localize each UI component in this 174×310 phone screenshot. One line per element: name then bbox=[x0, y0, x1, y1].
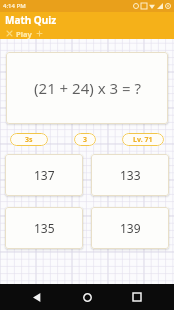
button[interactable]: Back bbox=[24, 284, 50, 310]
button[interactable]: Close quiz bbox=[4, 28, 14, 39]
button[interactable]: 139 bbox=[91, 207, 169, 249]
button[interactable]: 137 bbox=[5, 154, 83, 196]
staticText: (21 + 24) x 3 = ? bbox=[34, 78, 141, 98]
button[interactable]: 3 bbox=[74, 133, 96, 146]
staticText: 139 bbox=[120, 220, 141, 236]
staticText: 135 bbox=[34, 220, 55, 236]
button[interactable]: Lv. 71 bbox=[122, 133, 164, 146]
staticText: Math Quiz bbox=[5, 13, 57, 27]
staticText: 4:14 PM bbox=[3, 2, 26, 10]
staticText: 137 bbox=[34, 167, 55, 183]
staticText: Lv. 71 bbox=[133, 135, 153, 145]
staticText: 3s bbox=[25, 135, 33, 145]
staticText: 3 bbox=[83, 135, 88, 145]
button[interactable]: Home bbox=[74, 284, 100, 310]
button[interactable]: Add bbox=[34, 28, 44, 39]
button[interactable]: 133 bbox=[91, 154, 169, 196]
staticText: Play bbox=[16, 29, 32, 39]
button[interactable]: 135 bbox=[5, 207, 83, 249]
button[interactable]: 3s bbox=[10, 133, 48, 146]
staticText: 133 bbox=[120, 167, 141, 183]
button[interactable]: Recent apps bbox=[124, 284, 150, 310]
button[interactable]: Play bbox=[14, 28, 34, 39]
